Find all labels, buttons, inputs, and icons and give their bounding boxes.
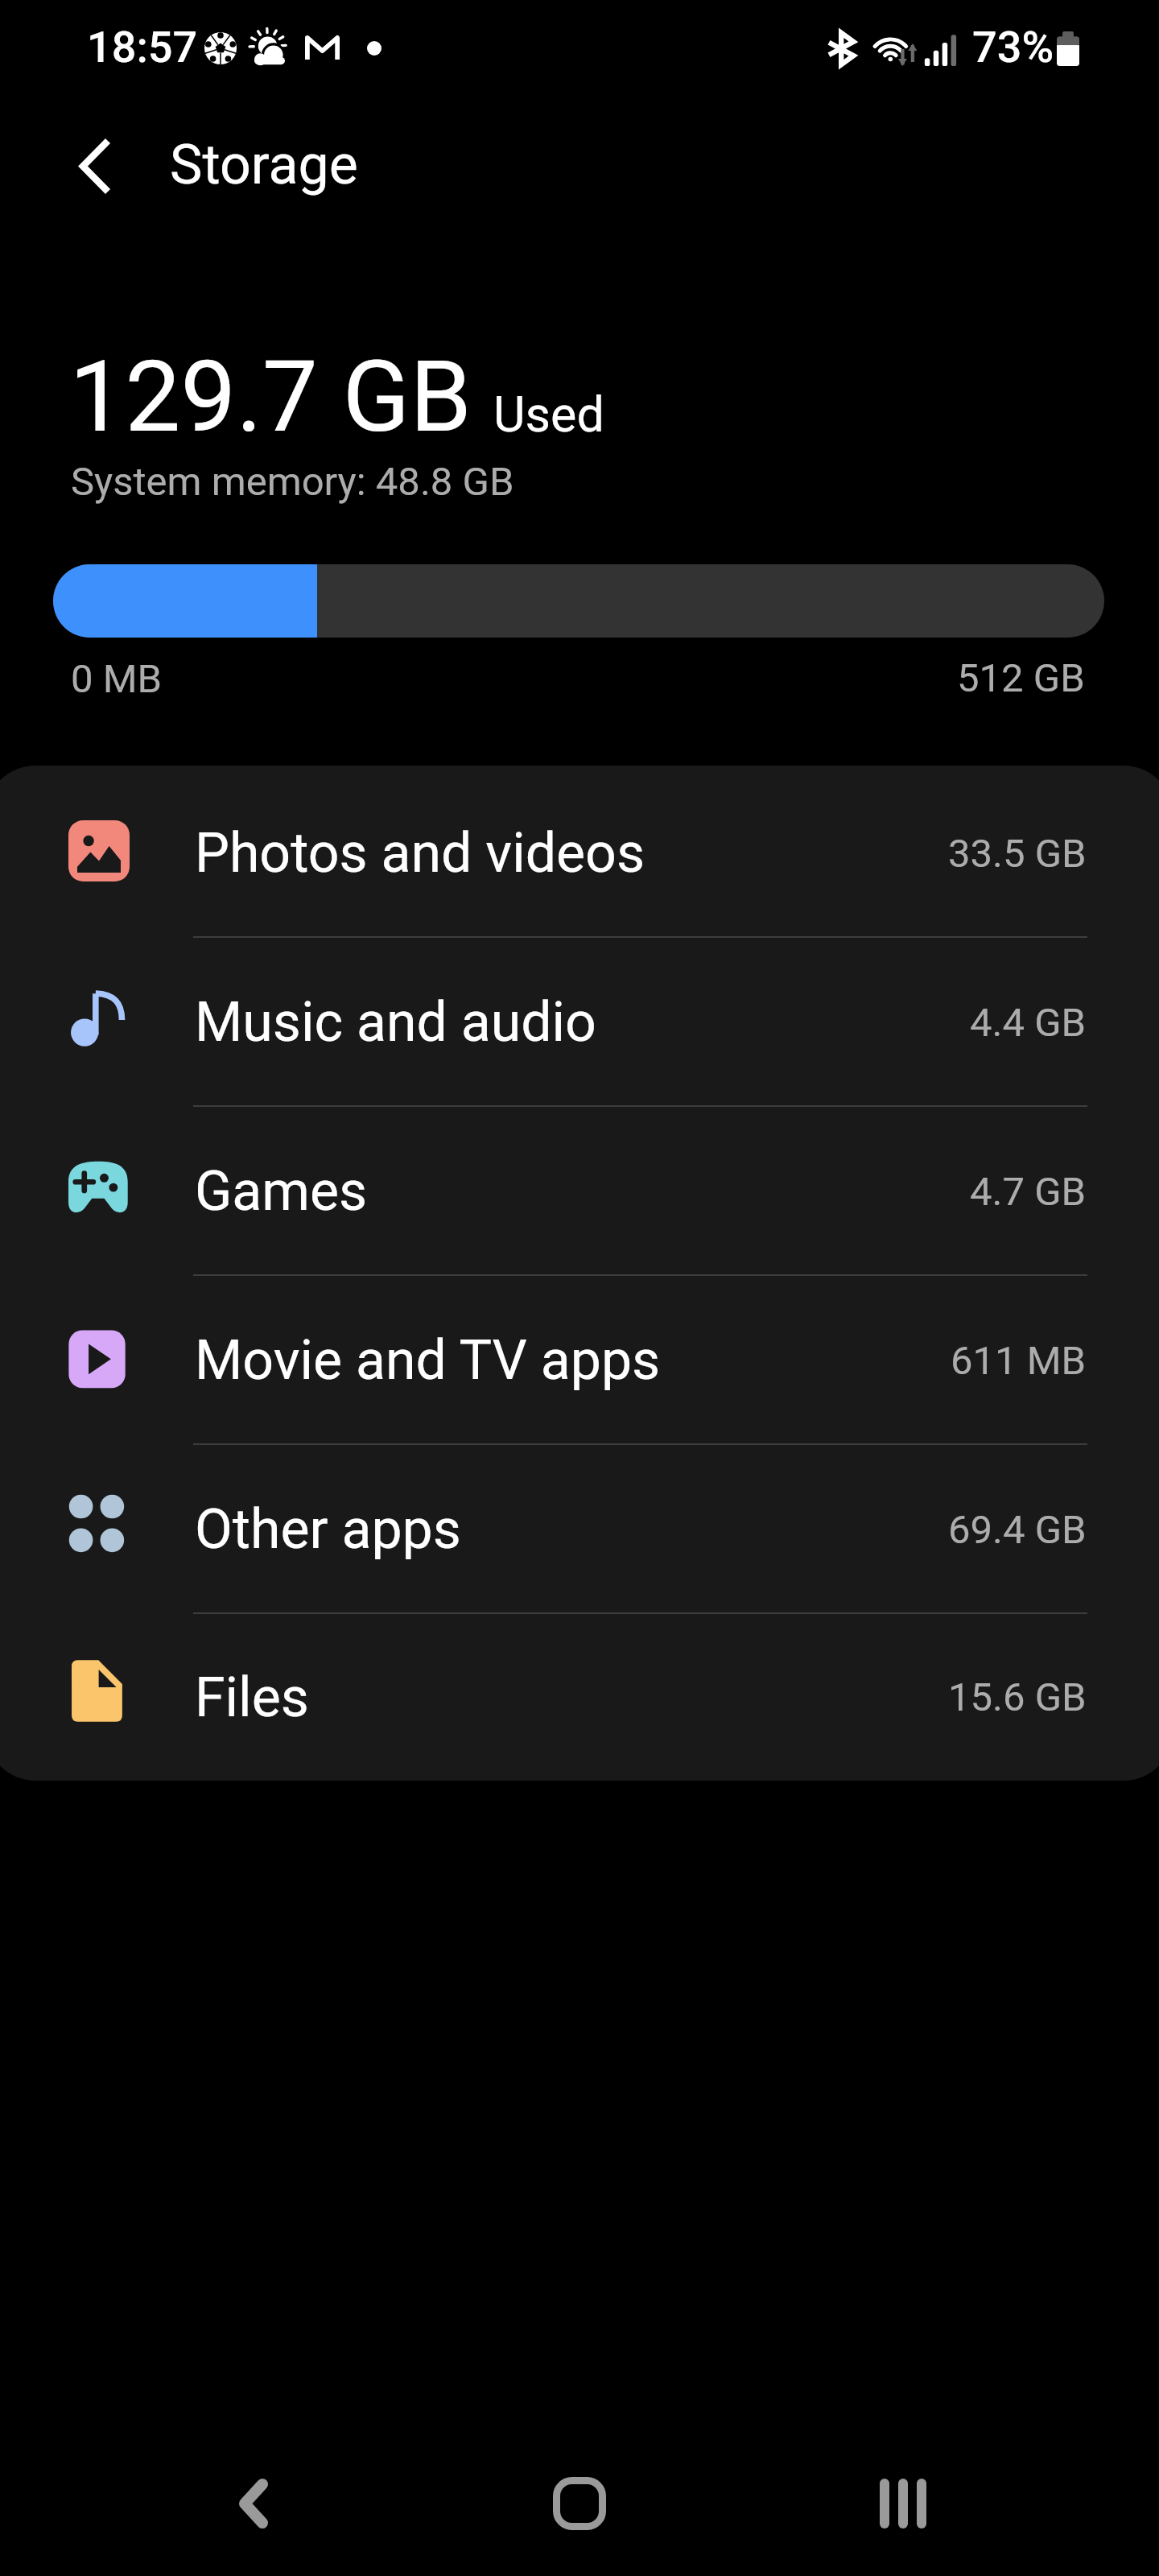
staticText: 33.5 GB xyxy=(948,831,1087,877)
button[interactable]: Navigate up xyxy=(48,119,142,213)
staticText: Games xyxy=(195,1159,368,1224)
staticText: 4.7 GB xyxy=(970,1169,1087,1215)
staticText: Files xyxy=(195,1666,309,1730)
button[interactable]: Movie and TV apps xyxy=(0,1276,1159,1445)
button[interactable]: Recent apps xyxy=(806,2431,1000,2576)
staticText: 4.4 GB xyxy=(970,1000,1087,1046)
button[interactable]: Home xyxy=(483,2431,676,2576)
staticText: System memory: 48.8 GB xyxy=(71,459,514,505)
staticText: 129.7 GB xyxy=(69,339,472,455)
button[interactable]: Music and audio xyxy=(0,938,1159,1107)
staticText: 512 GB xyxy=(957,655,1085,701)
staticText: 611 MB xyxy=(951,1338,1087,1384)
staticText: Music and audio xyxy=(195,990,596,1055)
staticText: Other apps xyxy=(195,1497,461,1562)
staticText: 73% xyxy=(972,22,1054,72)
staticText: 15.6 GB xyxy=(948,1674,1087,1720)
button[interactable]: Other apps xyxy=(0,1445,1159,1614)
button[interactable]: Files xyxy=(0,1614,1159,1781)
staticText: Used xyxy=(493,386,604,443)
button[interactable]: Photos and videos xyxy=(0,769,1159,938)
staticText: Photos and videos xyxy=(195,821,645,885)
staticText: 18:57 xyxy=(87,22,198,72)
button[interactable]: Back xyxy=(157,2431,350,2576)
staticText: Storage xyxy=(170,133,358,197)
button[interactable]: Games xyxy=(0,1107,1159,1276)
staticText: Movie and TV apps xyxy=(195,1328,661,1393)
staticText: 0 MB xyxy=(71,656,163,702)
staticText: 69.4 GB xyxy=(948,1507,1087,1553)
